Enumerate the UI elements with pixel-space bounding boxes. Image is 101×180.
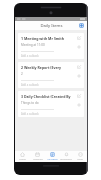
staticText: Home [19,158,26,161]
staticText: Things to do [21,101,39,105]
button[interactable]: Add subtask [76,44,82,50]
button[interactable]: Add subtask [76,102,82,108]
staticText: 2 Weekly Report (Every Monday) [21,65,75,70]
staticText: Meeting at 11:00 [21,43,45,47]
button[interactable]: Reminders [59,151,73,162]
button[interactable]: Home [15,151,30,162]
button[interactable]: Edit [76,93,82,99]
button[interactable]: Edit [76,64,82,70]
staticText: 2 [21,72,23,76]
button[interactable]: My Items [45,151,59,162]
staticText: Calendar [33,158,43,161]
staticText: 3 Daily Checklist (Created By Manager) [21,94,75,99]
staticText: My Items [47,158,58,161]
button[interactable]: 3 Daily Checklist (Created By Manager) [18,91,84,117]
button[interactable]: 2 Weekly Report (Every Monday) [18,62,84,88]
button[interactable]: 1 Meeting with Mr Smith [18,33,84,59]
staticText: Add a subtask [21,83,39,87]
button[interactable]: More [73,151,87,162]
staticText: Add a subtask [21,112,39,116]
button[interactable]: Calendar [30,151,45,162]
staticText: Reminders [60,158,72,161]
staticText: Add a subtask [21,54,39,58]
button[interactable]: Add subtask [76,73,82,79]
button[interactable]: Add item [78,22,85,29]
staticText: 1 Meeting with Mr Smith [21,36,65,41]
staticText: Daily Items [40,23,63,29]
staticText: More [77,158,83,161]
button[interactable]: Edit [76,35,82,41]
